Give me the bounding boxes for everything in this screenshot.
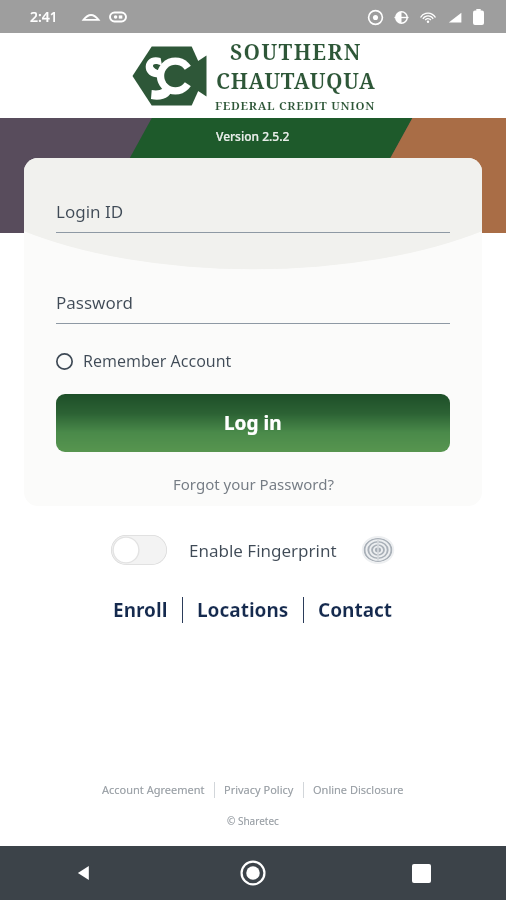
staticText: Online Disclosure: [313, 782, 404, 797]
button[interactable]: Locations: [183, 593, 303, 627]
staticText: Remember Account: [83, 350, 232, 372]
button[interactable]: Recent apps: [337, 846, 506, 900]
staticText: 2:41: [30, 7, 58, 26]
staticText: Account Agreement: [102, 782, 205, 797]
button[interactable]: Online Disclosure: [304, 779, 413, 800]
button[interactable]: Account Agreement: [93, 779, 214, 800]
staticText: CHAUTAUQUA: [216, 67, 376, 96]
staticText: FEDERAL CREDIT UNION: [215, 98, 376, 114]
button[interactable]: Password: [56, 291, 450, 324]
staticText: Login ID: [56, 200, 124, 223]
button[interactable]: Contact: [304, 593, 407, 627]
button[interactable]: Fingerprint: [361, 533, 395, 567]
button[interactable]: Forgot your Password?: [56, 474, 450, 494]
button[interactable]: Log in: [56, 394, 450, 452]
staticText: Contact: [318, 597, 393, 623]
staticText: SOUTHERN: [230, 38, 362, 67]
button[interactable]: Enable Fingerprint: [189, 539, 337, 562]
button[interactable]: Home: [168, 846, 337, 900]
staticText: © Sharetec: [227, 814, 279, 828]
staticText: Forgot your Password?: [173, 474, 334, 494]
staticText: Enroll: [113, 597, 168, 623]
staticText: Version 2.5.2: [216, 128, 290, 144]
staticText: Password: [56, 291, 133, 314]
staticText: Locations: [197, 597, 289, 623]
button[interactable]: Back: [0, 846, 168, 900]
button[interactable]: Enable Fingerprint toggle: [111, 535, 167, 565]
button[interactable]: Remember Account: [56, 350, 450, 372]
staticText: Privacy Policy: [224, 782, 294, 797]
button[interactable]: Privacy Policy: [215, 779, 303, 800]
button[interactable]: Enroll: [99, 593, 182, 627]
staticText: Log in: [224, 410, 282, 436]
button[interactable]: Login ID: [56, 200, 450, 233]
